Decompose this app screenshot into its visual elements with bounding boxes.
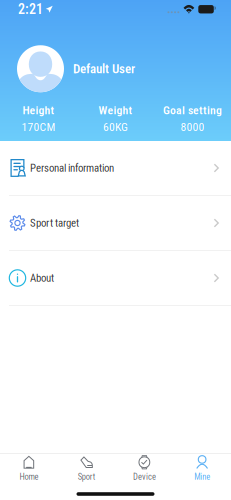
staticText: Weight	[98, 103, 132, 117]
staticText: 170CM	[21, 120, 55, 134]
button[interactable]: Mine	[173, 451, 231, 486]
button[interactable]: Home	[0, 451, 58, 486]
staticText: 2:21	[18, 1, 43, 17]
button[interactable]: About	[0, 251, 231, 306]
staticText: 60KG	[103, 120, 128, 134]
staticText: Home	[19, 472, 38, 482]
staticText: Personal information	[30, 162, 114, 174]
staticText: Default User	[73, 61, 135, 76]
staticText: Sport target	[30, 217, 79, 229]
button[interactable]: Device	[115, 451, 173, 486]
staticText: About	[30, 272, 54, 284]
button[interactable]: Personal information	[0, 141, 231, 196]
staticText: Height	[22, 103, 54, 117]
button[interactable]: Sport target	[0, 196, 231, 251]
staticText: Sport	[78, 472, 96, 482]
staticText: Mine	[194, 472, 210, 482]
staticText: 8000	[180, 120, 204, 134]
staticText: Device	[133, 472, 156, 482]
staticText: Goal setting	[163, 103, 222, 117]
button[interactable]: Sport	[58, 451, 116, 486]
